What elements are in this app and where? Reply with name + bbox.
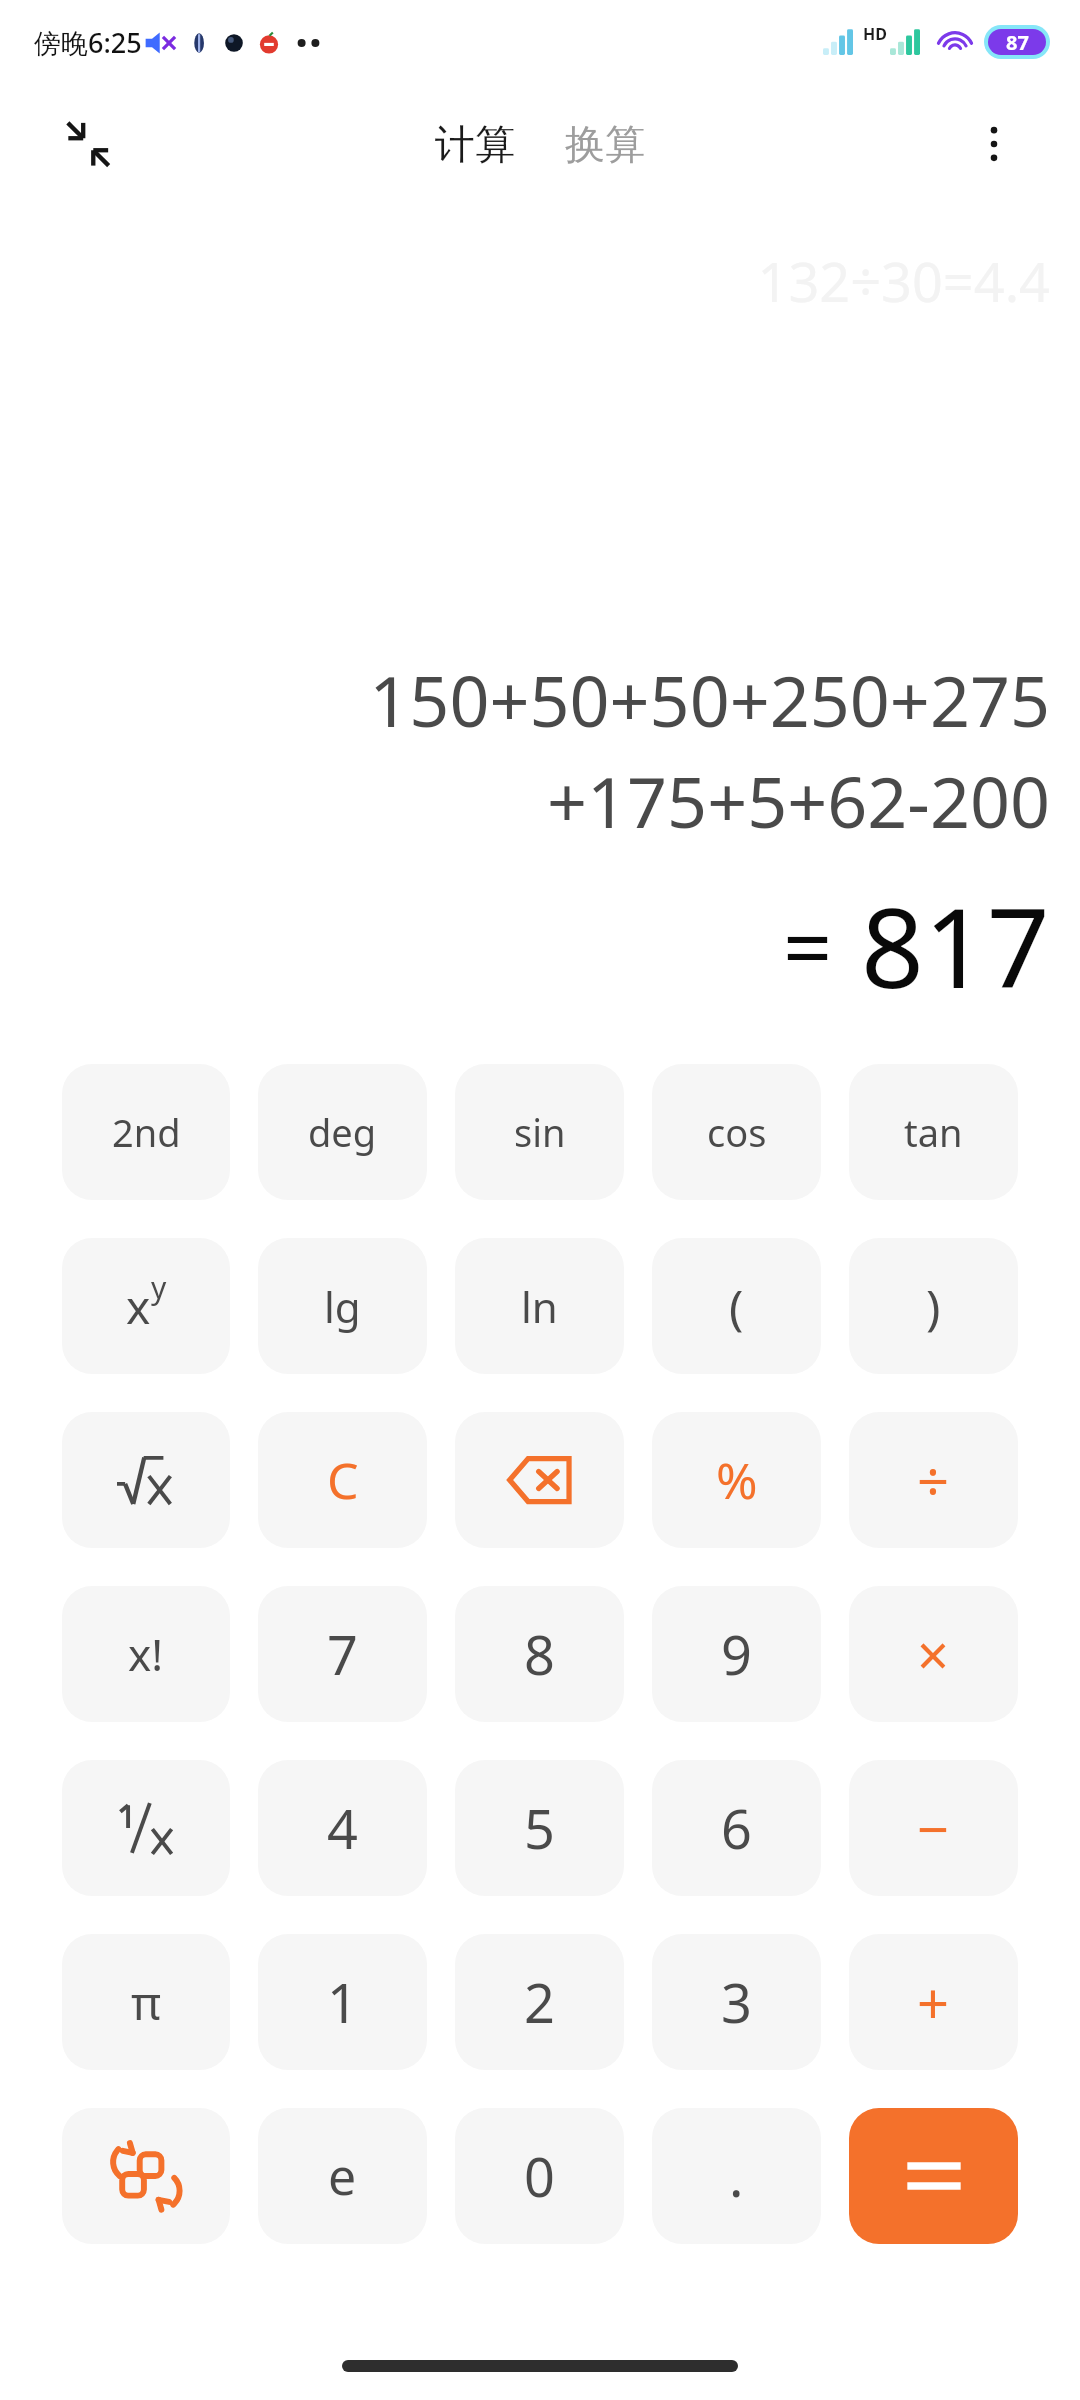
button[interactable]: 换算 <box>553 109 657 179</box>
staticText: ln <box>521 1278 558 1335</box>
staticText: 6 <box>721 1791 752 1865</box>
staticText: 傍晚6:25 <box>34 24 142 61</box>
button[interactable]: − <box>849 1760 1018 1896</box>
staticText: cos <box>707 1106 767 1158</box>
staticText: − <box>917 1790 950 1866</box>
button[interactable]: Collapse <box>48 104 128 184</box>
staticText: lg <box>324 1278 361 1335</box>
button[interactable]: + <box>849 1934 1018 2070</box>
staticText: y <box>151 1267 167 1308</box>
staticText: tan <box>904 1106 963 1158</box>
staticText: deg <box>308 1106 377 1158</box>
staticText: x <box>126 1275 151 1338</box>
button[interactable]: C <box>258 1412 427 1548</box>
staticText: HD <box>863 23 887 45</box>
button[interactable]: One over x <box>62 1760 230 1896</box>
staticText: 2 <box>524 1965 555 2039</box>
button[interactable]: % <box>652 1412 821 1548</box>
button[interactable]: 4 <box>258 1760 427 1896</box>
staticText: 8 <box>524 1617 555 1691</box>
staticText: 817 <box>861 870 1050 1020</box>
staticText: 150+50+50+250+275 <box>369 652 1050 747</box>
button[interactable]: 2 <box>455 1934 624 2070</box>
staticText: 0 <box>524 2139 555 2213</box>
staticText: 换算 <box>565 119 645 169</box>
button[interactable]: 1 <box>258 1934 427 2070</box>
staticText: × <box>917 1616 950 1692</box>
staticText: x! <box>128 1624 164 1684</box>
button[interactable]: Equals <box>849 2108 1018 2244</box>
button[interactable]: 9 <box>652 1586 821 1722</box>
staticText: sin <box>514 1106 566 1158</box>
button[interactable]: cos <box>652 1064 821 1200</box>
button[interactable]: × <box>849 1586 1018 1722</box>
button[interactable]: x! <box>62 1586 230 1722</box>
staticText: 1 <box>327 1965 358 2039</box>
staticText: 87 <box>1006 29 1029 55</box>
button[interactable]: Square root <box>62 1412 230 1548</box>
button[interactable]: More options <box>956 106 1032 182</box>
staticText: ÷ <box>917 1442 950 1518</box>
staticText: π <box>131 1971 162 2034</box>
staticText: 2nd <box>112 1106 181 1158</box>
button[interactable]: 5 <box>455 1760 624 1896</box>
button[interactable]: ln <box>455 1238 624 1374</box>
staticText: 3 <box>721 1965 752 2039</box>
button[interactable]: . <box>652 2108 821 2244</box>
button[interactable]: 计算 <box>423 109 527 179</box>
button[interactable]: Unit convert <box>62 2108 230 2244</box>
staticText: +175+5+62-200 <box>546 753 1050 848</box>
button[interactable]: e <box>258 2108 427 2244</box>
staticText: 9 <box>721 1617 752 1691</box>
button[interactable]: deg <box>258 1064 427 1200</box>
staticText: 计算 <box>435 119 515 169</box>
button[interactable]: ) <box>849 1238 1018 1374</box>
button[interactable]: 0 <box>455 2108 624 2244</box>
button[interactable]: lg <box>258 1238 427 1374</box>
staticText: e <box>328 2142 357 2210</box>
staticText: 4 <box>327 1791 358 1865</box>
staticText: 7 <box>327 1617 358 1691</box>
staticText: + <box>917 1964 950 2040</box>
button[interactable]: tan <box>849 1064 1018 1200</box>
staticText: C <box>327 1446 359 1514</box>
button[interactable]: sin <box>455 1064 624 1200</box>
button[interactable]: 8 <box>455 1586 624 1722</box>
button[interactable]: π <box>62 1934 230 2070</box>
button[interactable]: 7 <box>258 1586 427 1722</box>
button[interactable]: Backspace <box>455 1412 624 1548</box>
staticText: ( <box>729 1274 744 1339</box>
staticText: 5 <box>524 1791 555 1865</box>
button[interactable]: 2nd <box>62 1064 230 1200</box>
button[interactable]: 6 <box>652 1760 821 1896</box>
staticText: ) <box>926 1274 941 1339</box>
staticText: 132÷30=4.4 <box>757 244 1050 318</box>
staticText: = <box>783 887 833 1004</box>
button[interactable]: 3 <box>652 1934 821 2070</box>
button[interactable]: x to the power y <box>62 1238 230 1374</box>
button[interactable]: ( <box>652 1238 821 1374</box>
staticText: . <box>729 2139 744 2213</box>
button[interactable]: ÷ <box>849 1412 1018 1548</box>
staticText: % <box>716 1446 758 1514</box>
